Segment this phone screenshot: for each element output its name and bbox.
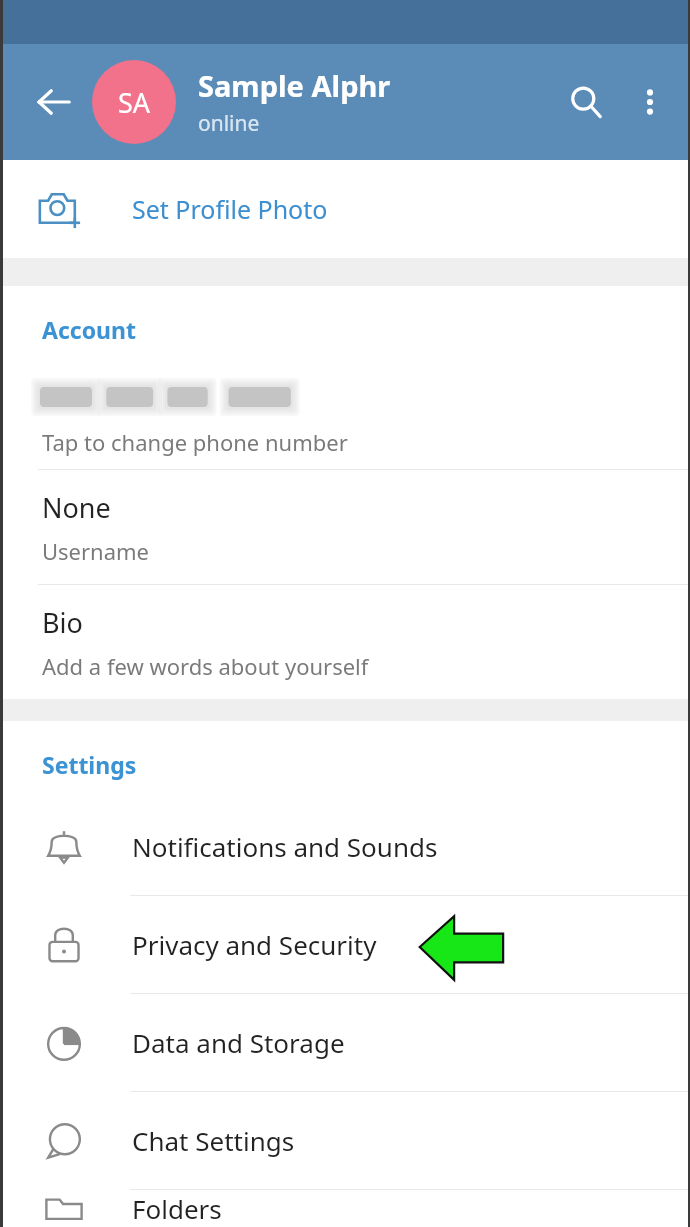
staticText: Account — [42, 314, 136, 345]
button[interactable]: Tap to change phone number — [0, 369, 690, 469]
staticText: Add a few words about yourself — [42, 651, 369, 681]
staticText: Data and Storage — [132, 1025, 345, 1060]
staticText: Chat Settings — [132, 1123, 295, 1158]
staticText: Settings — [42, 749, 137, 780]
staticText: online — [198, 109, 260, 138]
button[interactable]: Set Profile Photo — [0, 160, 690, 258]
button[interactable]: Data and Storage — [0, 994, 690, 1091]
button[interactable]: Bio — [0, 585, 690, 699]
button[interactable]: None — [0, 470, 690, 584]
staticText: Username — [42, 536, 150, 566]
staticText: Notifications and Sounds — [132, 829, 438, 864]
staticText: Privacy and Security — [132, 927, 377, 962]
staticText: Folders — [132, 1191, 222, 1226]
staticText: Sample Alphr — [198, 66, 391, 105]
staticText: Set Profile Photo — [132, 192, 328, 226]
button[interactable]: More options — [618, 70, 682, 134]
button[interactable]: Search — [554, 70, 618, 134]
staticText: Tap to change phone number — [42, 427, 348, 457]
staticText: Bio — [42, 604, 83, 641]
button[interactable]: Notifications and Sounds — [0, 798, 690, 895]
button[interactable]: Chat Settings — [0, 1092, 690, 1189]
staticText: SA — [118, 84, 151, 121]
button[interactable]: Privacy and Security — [0, 896, 690, 993]
button[interactable]: Folders — [0, 1190, 690, 1227]
button[interactable]: Back — [24, 72, 84, 132]
staticText: None — [42, 489, 111, 526]
